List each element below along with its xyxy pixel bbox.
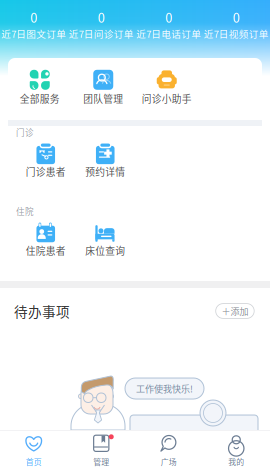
button[interactable]: 床位查询 (75, 223, 135, 258)
button[interactable]: 预约详情 (75, 144, 135, 179)
staticText: ＋添加 (221, 304, 248, 317)
staticText: 待办事项 (14, 301, 70, 321)
staticText: 预约详情 (85, 165, 125, 179)
staticText: 近7日问诊订单 (69, 26, 134, 40)
staticText: 门诊 (16, 126, 34, 138)
staticText: 0 (98, 8, 105, 26)
button[interactable]: 团队管理 (71, 69, 135, 120)
staticText: 工作使我快乐! (136, 382, 193, 395)
button[interactable]: 门诊患者 (16, 144, 75, 179)
button[interactable]: 0 (67, 8, 135, 58)
staticText: 我的 (228, 456, 244, 467)
staticText: 全部服务 (20, 91, 60, 105)
staticText: 0 (30, 8, 37, 26)
button[interactable]: 我的 (202, 430, 270, 467)
staticText: 管理 (93, 456, 109, 467)
button[interactable]: 全部服务 (8, 69, 71, 120)
staticText: 团队管理 (83, 91, 123, 105)
button[interactable]: 问诊小助手 (135, 69, 198, 120)
button[interactable]: 0 (202, 8, 270, 58)
staticText: 0 (165, 8, 172, 26)
button[interactable]: 0 (0, 8, 67, 58)
staticText: 近7日图文订单 (1, 26, 66, 40)
button[interactable]: 广场 (135, 430, 202, 467)
staticText: 门诊患者 (26, 165, 66, 179)
button[interactable]: 住院患者 (16, 223, 75, 258)
staticText: 近7日电话订单 (136, 26, 201, 40)
staticText: 问诊小助手 (142, 91, 192, 105)
staticText: 首页 (26, 456, 42, 467)
staticText: 住院 (16, 205, 34, 217)
button[interactable]: 0 (135, 8, 202, 58)
staticText: 0 (233, 8, 240, 26)
staticText: 近7日视频订单 (204, 26, 269, 40)
staticText: 床位查询 (85, 244, 125, 258)
button[interactable]: 管理 (67, 430, 135, 467)
staticText: 广场 (161, 456, 177, 467)
button[interactable]: ＋添加 (216, 304, 254, 318)
button[interactable]: 首页 (0, 430, 67, 467)
staticText: 住院患者 (26, 244, 66, 258)
